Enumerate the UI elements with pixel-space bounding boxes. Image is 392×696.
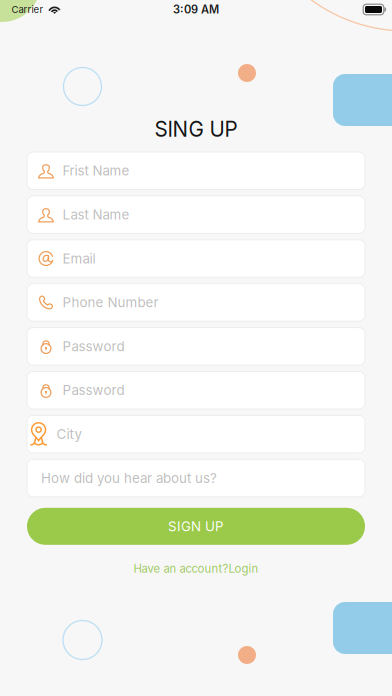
button[interactable]: Email	[27, 240, 365, 277]
staticText: SIGN UP	[168, 518, 224, 534]
button[interactable]: Password	[27, 328, 365, 365]
staticText: SING UP	[154, 117, 237, 142]
button[interactable]: How did you hear about us?	[27, 459, 365, 497]
staticText: Carrier	[11, 4, 43, 15]
button[interactable]: Phone Number	[27, 284, 365, 321]
button[interactable]: Have an account?Login	[133, 562, 258, 575]
button[interactable]: City	[27, 415, 365, 453]
button[interactable]: SIGN UP	[27, 508, 365, 545]
staticText: Password	[62, 338, 124, 354]
button[interactable]: Password	[27, 371, 365, 409]
staticText: City	[56, 426, 81, 442]
staticText: Email	[62, 250, 95, 267]
staticText: Phone Number	[62, 294, 158, 310]
staticText: Have an account?Login	[133, 562, 258, 575]
staticText: Password	[62, 382, 124, 398]
button[interactable]: Last Name	[27, 196, 365, 233]
staticText: 3:09 AM	[173, 3, 219, 16]
staticText: How did you hear about us?	[41, 470, 217, 486]
staticText: Last Name	[62, 207, 129, 223]
button[interactable]: Frist Name	[27, 152, 365, 189]
staticText: Frist Name	[62, 163, 129, 179]
